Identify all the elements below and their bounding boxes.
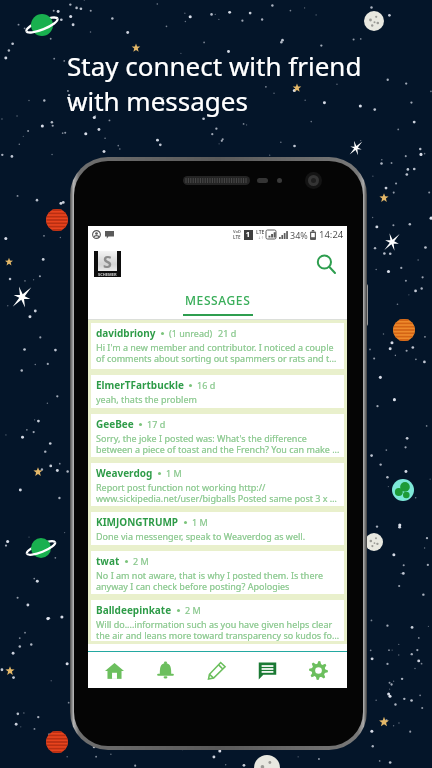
staticText: Report post function not working http://… bbox=[96, 481, 340, 504]
button[interactable]: Compose bbox=[198, 652, 234, 688]
button[interactable]: Home bbox=[96, 652, 132, 688]
staticText: yeah, thats the problem bbox=[96, 393, 197, 405]
staticText: twat bbox=[96, 554, 120, 568]
staticText: Done via messenger, speak to Weaverdog a… bbox=[96, 530, 306, 542]
staticText: S bbox=[103, 251, 112, 271]
staticText: Will do....information such as you have … bbox=[96, 618, 340, 641]
staticText: LTE bbox=[256, 229, 265, 236]
staticText: davidbriony bbox=[96, 326, 156, 340]
button[interactable]: Settings bbox=[300, 652, 336, 688]
staticText: with messages bbox=[67, 83, 248, 118]
staticText: 2 M bbox=[133, 555, 149, 567]
button[interactable]: Notifications bbox=[147, 652, 183, 688]
staticText: 14:24 bbox=[319, 228, 344, 241]
staticText: GeeBee bbox=[96, 417, 134, 431]
staticText: 1 M bbox=[192, 516, 208, 528]
staticText: SCHEMER bbox=[98, 272, 117, 277]
staticText: Stay connect with friend bbox=[67, 48, 362, 83]
button[interactable]: GeeBee bbox=[91, 414, 344, 457]
button[interactable]: Messages bbox=[249, 652, 285, 688]
staticText: 2 M bbox=[185, 604, 201, 616]
staticText: ElmerTFartbuckle bbox=[96, 378, 184, 392]
staticText: Sorry, the joke I posted was: What's the… bbox=[96, 432, 340, 455]
staticText: Hi I'm a new member and contributor. I n… bbox=[96, 341, 340, 364]
staticText: 17 d bbox=[147, 418, 166, 430]
staticText: 34% bbox=[290, 229, 308, 241]
staticText: 1 bbox=[246, 230, 251, 240]
staticText: No I am not aware, that is why I posted … bbox=[96, 569, 340, 592]
staticText: 1 M bbox=[166, 467, 182, 479]
staticText: VoD bbox=[233, 229, 241, 234]
button[interactable]: KIMJONGTRUMP bbox=[91, 512, 344, 545]
staticText: LTE bbox=[233, 234, 241, 240]
staticText: 16 d bbox=[197, 379, 216, 391]
button[interactable]: Balldeepinkate bbox=[91, 600, 344, 641]
button[interactable]: davidbriony bbox=[91, 323, 344, 369]
staticText: MESSAGES bbox=[185, 292, 251, 308]
button[interactable]: Weaverdog bbox=[91, 463, 344, 506]
button[interactable]: Search bbox=[311, 249, 341, 279]
button[interactable]: twat bbox=[91, 551, 344, 594]
staticText: ↓↑ bbox=[258, 236, 264, 240]
staticText: Balldeepinkate bbox=[96, 603, 172, 617]
staticText: (1 unread) bbox=[169, 327, 213, 339]
button[interactable]: MESSAGES bbox=[88, 285, 347, 314]
staticText: Weaverdog bbox=[96, 466, 153, 480]
staticText: 21 d bbox=[218, 327, 237, 339]
staticText: KIMJONGTRUMP bbox=[96, 515, 179, 529]
button[interactable]: ElmerTFartbuckle bbox=[91, 375, 344, 408]
button[interactable]: App logo bbox=[94, 251, 121, 277]
